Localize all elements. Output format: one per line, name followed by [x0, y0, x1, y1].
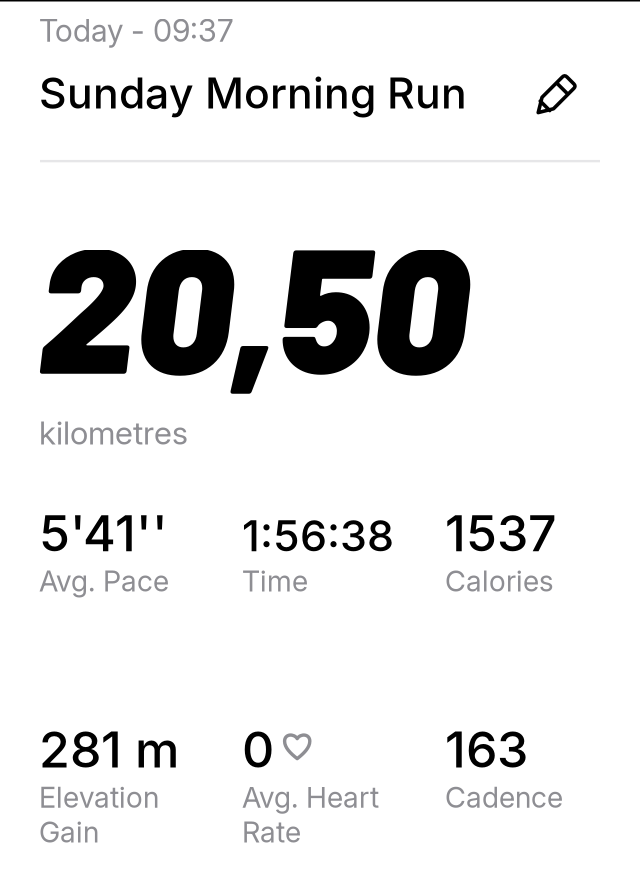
staticText: Elevation Gain	[39, 780, 159, 849]
button[interactable]: Edit workout	[522, 64, 586, 128]
staticText: 281 m	[39, 719, 179, 779]
staticText: Time	[242, 564, 308, 598]
staticText: Sunday Morning Run	[39, 67, 467, 119]
staticText: 1:56:38	[242, 510, 394, 562]
staticText: 1537	[445, 503, 557, 563]
staticText: 5'41''	[39, 503, 168, 563]
staticText: kilometres	[39, 413, 188, 452]
staticText: 0	[242, 719, 274, 779]
staticText: Today - 09:37	[39, 12, 234, 49]
staticText: Cadence	[445, 780, 563, 815]
staticText: Avg. Pace	[39, 564, 169, 598]
staticText: Calories	[445, 564, 554, 598]
staticText: Avg. Heart Rate	[242, 780, 379, 849]
staticText: 163	[445, 719, 528, 779]
staticText: 20,50	[37, 199, 468, 409]
